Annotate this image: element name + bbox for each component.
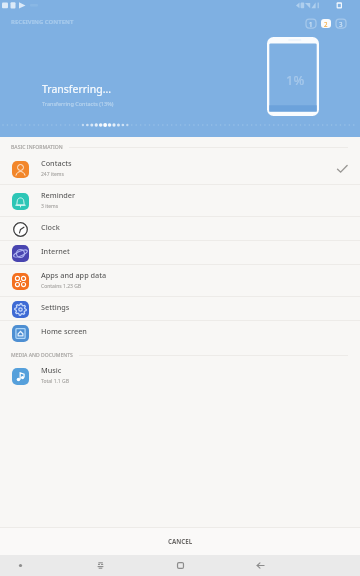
button[interactable]: 2: [321, 19, 331, 28]
staticText: Internet: [41, 246, 70, 256]
button[interactable]: Apps and app data: [0, 265, 360, 297]
button[interactable]: Back: [246, 555, 274, 576]
button[interactable]: Menu: [6, 555, 34, 576]
staticText: Clock: [41, 222, 60, 232]
staticText: CANCEL: [168, 537, 193, 545]
staticText: 1%: [286, 71, 305, 89]
button[interactable]: Music: [0, 360, 360, 392]
staticText: 3: [339, 20, 343, 28]
button[interactable]: 1: [306, 19, 316, 28]
staticText: Contains 1.23 GB: [41, 283, 82, 290]
staticText: Music: [41, 365, 62, 375]
button[interactable]: Home screen: [0, 321, 360, 345]
staticText: 1: [309, 20, 313, 28]
staticText: 2: [324, 20, 328, 28]
staticText: 247 items: [41, 171, 64, 178]
staticText: Settings: [41, 302, 70, 312]
staticText: BASIC INFORMATION: [11, 144, 63, 151]
button[interactable]: Keyboard: [86, 555, 114, 576]
staticText: RECEIVING CONTENT: [11, 18, 74, 26]
staticText: Contacts: [41, 158, 72, 168]
button[interactable]: CANCEL: [142, 531, 219, 551]
staticText: Transferring...: [42, 82, 112, 96]
button[interactable]: Reminder: [0, 185, 360, 217]
button[interactable]: Settings: [0, 297, 360, 321]
button[interactable]: Internet: [0, 241, 360, 265]
staticText: 3 items: [41, 203, 59, 210]
staticText: MEDIA AND DOCUMENTS: [11, 352, 73, 359]
staticText: Total 1.1 GB: [41, 378, 69, 385]
button[interactable]: 3: [336, 19, 346, 28]
staticText: Transferring Contacts (13%): [42, 100, 114, 107]
staticText: Reminder: [41, 190, 76, 200]
staticText: Apps and app data: [41, 270, 107, 280]
staticText: Home screen: [41, 326, 87, 336]
button[interactable]: Recents: [166, 555, 194, 576]
button[interactable]: Contacts: [0, 153, 360, 185]
button[interactable]: Clock: [0, 217, 360, 241]
